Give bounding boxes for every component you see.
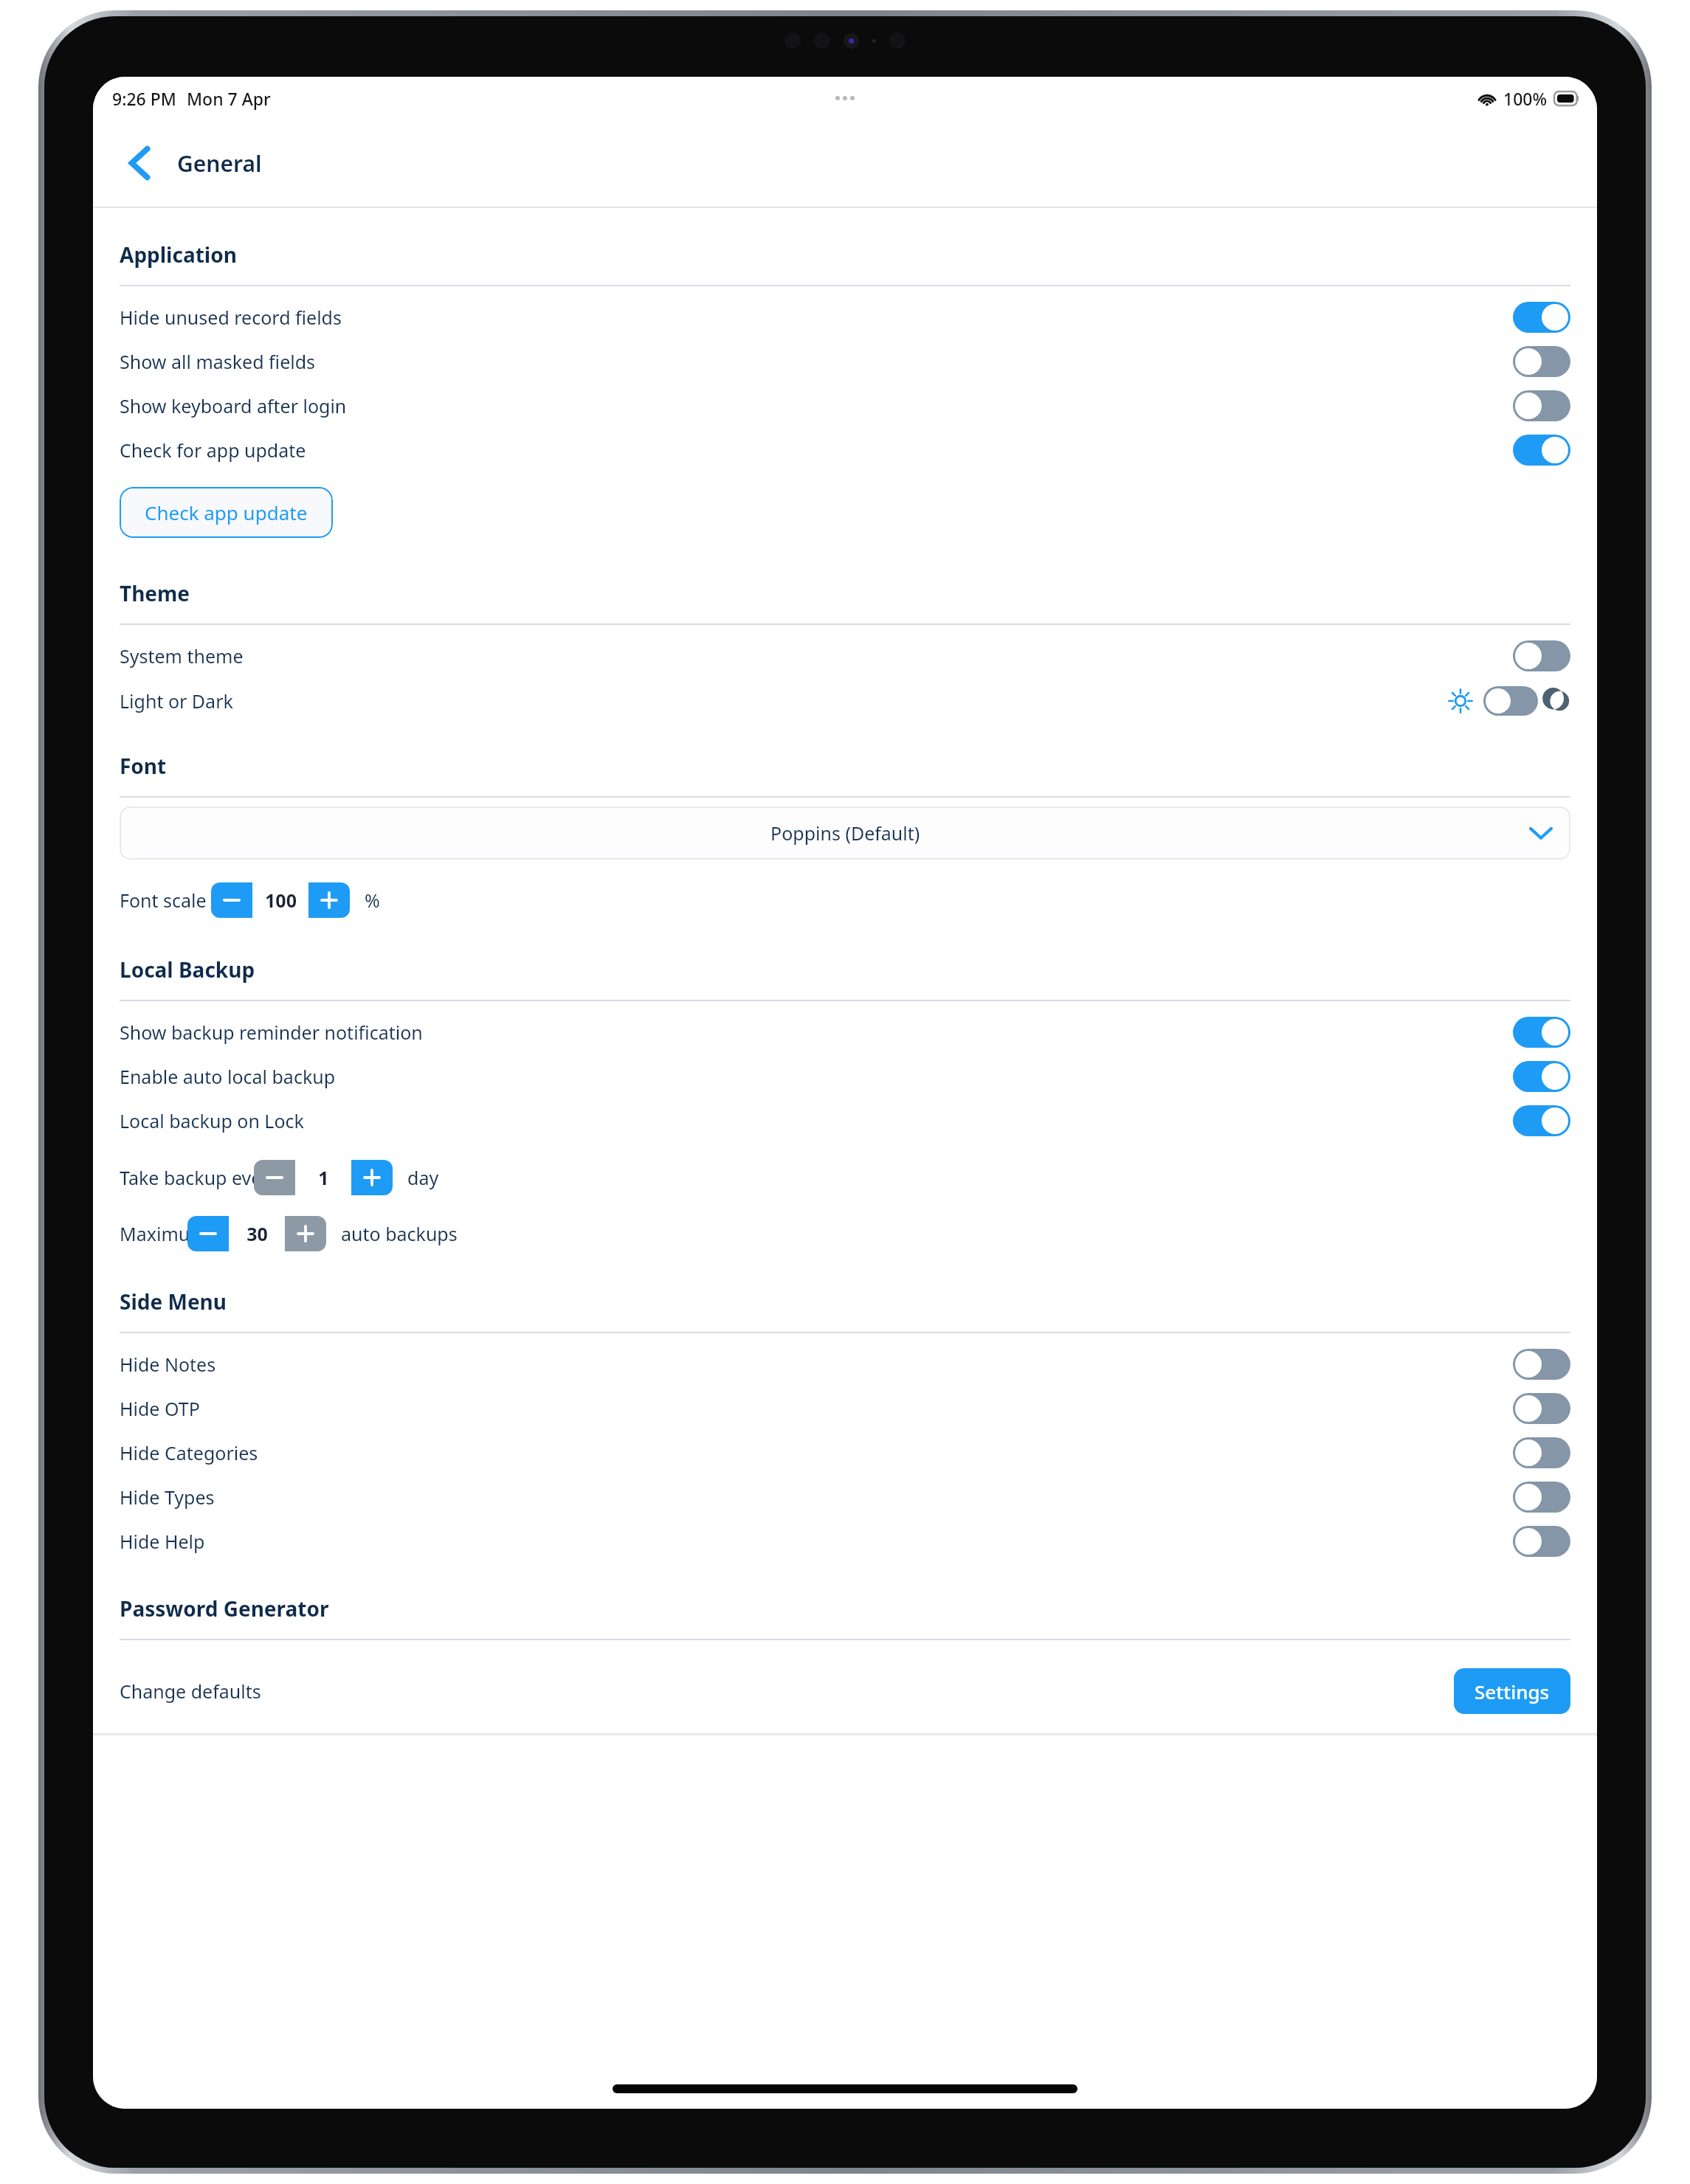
button[interactable]: Poppins (Default) [120, 806, 1570, 860]
staticText: day [407, 1165, 439, 1190]
staticText: Show all masked fields [120, 349, 316, 374]
staticText: 1 [318, 1165, 329, 1190]
staticText: 30 [246, 1221, 268, 1246]
staticText: Change defaults [120, 1679, 261, 1704]
button[interactable]: Show keyboard after login [93, 384, 1597, 428]
staticText: Show keyboard after login [120, 393, 347, 418]
button[interactable]: Hide Notes [93, 1342, 1597, 1386]
button[interactable]: Decrease [254, 1160, 295, 1195]
staticText: 9:26 PM [112, 87, 176, 110]
button[interactable]: Hide unused record fields [93, 295, 1597, 339]
staticText: System theme [120, 643, 244, 668]
staticText: General [177, 148, 262, 179]
button[interactable]: Light or Dark [93, 678, 1597, 724]
staticText: Hide unused record fields [120, 305, 342, 330]
staticText: Application [120, 241, 237, 269]
staticText: Local backup on Lock [120, 1108, 304, 1133]
button[interactable]: Decrease [211, 882, 252, 918]
button[interactable]: Settings [1454, 1668, 1570, 1714]
staticText: Password Generator [120, 1594, 329, 1623]
button[interactable]: Hide Help [93, 1519, 1597, 1563]
staticText: Hide Notes [120, 1352, 216, 1377]
button[interactable]: Hide Categories [93, 1431, 1597, 1475]
staticText: Poppins (Default) [770, 820, 920, 846]
staticText: Hide Types [120, 1485, 215, 1510]
staticText: Light or Dark [120, 688, 233, 713]
button[interactable]: Show backup reminder notification [93, 1010, 1597, 1054]
staticText: Local Backup [120, 955, 255, 984]
staticText: Take backup every [120, 1165, 279, 1190]
button[interactable]: Hide Types [93, 1475, 1597, 1519]
button[interactable]: Check app update [120, 487, 333, 538]
staticText: auto backups [341, 1221, 458, 1246]
staticText: Maximum [120, 1221, 207, 1246]
button[interactable]: Local backup on Lock [93, 1099, 1597, 1143]
staticText: Hide Categories [120, 1440, 258, 1465]
button[interactable]: Hide OTP [93, 1386, 1597, 1431]
button[interactable]: Increase [308, 882, 350, 918]
button[interactable]: Check for app update [93, 428, 1597, 472]
staticText: 100 [265, 888, 297, 913]
staticText: Check app update [145, 500, 308, 525]
staticText: 100% [1503, 87, 1548, 110]
staticText: Font [120, 752, 167, 780]
staticText: Mon 7 Apr [187, 87, 271, 110]
staticText: Check for app update [120, 438, 306, 463]
button[interactable]: Enable auto local backup [93, 1054, 1597, 1099]
staticText: Side Menu [120, 1288, 227, 1316]
staticText: Theme [120, 579, 190, 607]
staticText: Show backup reminder notification [120, 1020, 423, 1045]
staticText: % [365, 888, 380, 913]
staticText: Settings [1475, 1679, 1550, 1704]
button[interactable]: Increase [285, 1216, 326, 1251]
staticText: Hide OTP [120, 1396, 200, 1421]
staticText: Enable auto local backup [120, 1064, 336, 1089]
staticText: Font scale [120, 888, 207, 913]
button[interactable]: Decrease [187, 1216, 229, 1251]
button[interactable]: Increase [351, 1160, 393, 1195]
staticText: Hide Help [120, 1529, 205, 1554]
button[interactable]: Show all masked fields [93, 339, 1597, 384]
button[interactable]: Back [114, 136, 167, 190]
button[interactable]: System theme [93, 634, 1597, 678]
